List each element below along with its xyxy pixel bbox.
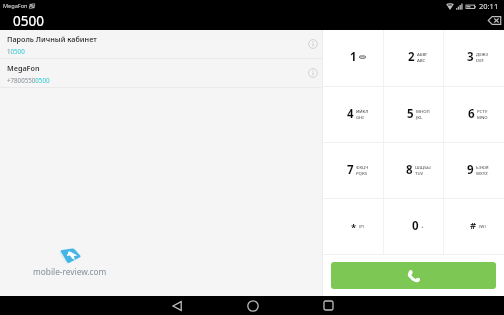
staticText: MegaFon bbox=[3, 2, 28, 10]
button[interactable]: Пароль Личный кабинет bbox=[0, 30, 323, 59]
staticText: 7 bbox=[347, 162, 354, 178]
button[interactable]: 1 bbox=[323, 30, 384, 86]
staticText: MNO bbox=[477, 114, 488, 120]
staticText: ЬЭЮЯ bbox=[476, 164, 489, 170]
button[interactable]: Recents bbox=[290, 296, 366, 315]
staticText: WXYZ bbox=[476, 170, 488, 176]
button[interactable]: Details bbox=[306, 66, 320, 80]
staticText: ИЙКЛ bbox=[356, 108, 369, 114]
staticText: ШЩЪЫ bbox=[415, 164, 431, 170]
staticText: * bbox=[351, 221, 357, 234]
staticText: ABC bbox=[417, 57, 426, 63]
button[interactable]: # bbox=[444, 199, 504, 254]
staticText: 5 bbox=[407, 106, 414, 122]
staticText: +78005500500 bbox=[7, 76, 50, 84]
staticText: 8 bbox=[406, 162, 413, 178]
staticText: АБВГ bbox=[417, 51, 428, 57]
staticText: РСТУ bbox=[477, 108, 488, 114]
button[interactable]: 3 bbox=[444, 30, 504, 86]
staticText: 0 bbox=[412, 218, 419, 234]
staticText: TUV bbox=[415, 170, 424, 176]
staticText: 10500 bbox=[7, 47, 25, 55]
button[interactable]: 0 bbox=[384, 199, 444, 254]
staticText: # bbox=[470, 219, 477, 232]
button[interactable]: * bbox=[323, 199, 384, 254]
staticText: + bbox=[421, 223, 424, 229]
button[interactable]: 8 bbox=[384, 143, 444, 198]
staticText: 1 bbox=[350, 49, 357, 65]
button[interactable]: Home bbox=[215, 296, 291, 315]
staticText: МНОП bbox=[416, 108, 430, 114]
button[interactable]: 5 bbox=[384, 87, 444, 142]
staticText: mobile-review.com bbox=[33, 266, 107, 277]
staticText: 6 bbox=[468, 106, 475, 122]
button[interactable]: Call bbox=[331, 262, 496, 289]
staticText: MegaFon bbox=[7, 63, 40, 73]
button[interactable]: Back bbox=[139, 296, 215, 315]
staticText: 20:11 bbox=[479, 1, 499, 11]
button[interactable]: MegaFon bbox=[0, 59, 323, 88]
staticText: GHI bbox=[356, 114, 364, 120]
staticText: ДЕЖЗ bbox=[476, 51, 489, 57]
button[interactable]: 4 bbox=[323, 87, 384, 142]
button[interactable]: Details bbox=[306, 37, 320, 51]
staticText: (W) bbox=[479, 223, 486, 229]
staticText: ФХЦЧ bbox=[356, 164, 369, 170]
staticText: Пароль Личный кабинет bbox=[7, 34, 97, 44]
button[interactable]: Backspace bbox=[486, 12, 502, 28]
staticText: JKL bbox=[416, 114, 423, 120]
button[interactable]: 7 bbox=[323, 143, 384, 198]
staticText: (P) bbox=[359, 223, 365, 229]
staticText: DEF bbox=[476, 57, 484, 63]
staticText: 4 bbox=[347, 106, 354, 122]
staticText: 2 bbox=[408, 49, 415, 65]
button[interactable]: 6 bbox=[444, 87, 504, 142]
staticText: 3 bbox=[467, 49, 474, 65]
staticText: PQRS bbox=[356, 170, 368, 176]
button[interactable]: 2 bbox=[384, 30, 444, 86]
staticText: 9 bbox=[467, 162, 474, 178]
button[interactable]: 9 bbox=[444, 143, 504, 198]
staticText: 0500 bbox=[13, 12, 44, 30]
